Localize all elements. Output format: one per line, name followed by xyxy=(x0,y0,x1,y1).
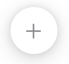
button[interactable]: Add xyxy=(11,8,58,55)
